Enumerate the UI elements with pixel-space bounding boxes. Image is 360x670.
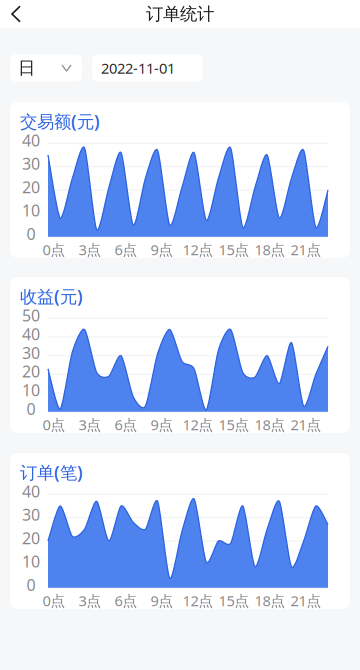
- button[interactable]: 日: [10, 54, 82, 81]
- staticText: 18点: [254, 240, 285, 259]
- staticText: 订单(笔): [20, 461, 83, 484]
- staticText: 30: [22, 504, 40, 525]
- staticText: 21点: [290, 415, 321, 434]
- staticText: 3点: [78, 240, 101, 259]
- staticText: 20: [22, 527, 40, 549]
- staticText: 20: [22, 361, 40, 382]
- staticText: 0: [26, 398, 35, 419]
- staticText: 6点: [114, 591, 137, 610]
- staticText: 15点: [218, 415, 249, 434]
- staticText: 9点: [150, 240, 173, 259]
- staticText: 0: [26, 223, 35, 244]
- staticText: 0: [26, 574, 35, 595]
- staticText: 40: [22, 130, 40, 151]
- staticText: 9点: [150, 591, 173, 610]
- staticText: 6点: [114, 240, 137, 259]
- staticText: 10: [22, 379, 40, 401]
- staticText: 9点: [150, 415, 173, 434]
- staticText: 30: [22, 153, 40, 174]
- staticText: 2022-11-01: [101, 58, 175, 78]
- button[interactable]: 2022-11-01: [92, 54, 203, 81]
- staticText: 0点: [42, 415, 65, 434]
- staticText: 日: [18, 57, 35, 79]
- staticText: 3点: [78, 591, 101, 610]
- staticText: 订单统计: [146, 3, 214, 25]
- staticText: 15点: [218, 240, 249, 259]
- staticText: 10: [22, 200, 40, 221]
- staticText: 10: [22, 551, 40, 572]
- button[interactable]: 返回: [0, 0, 30, 28]
- staticText: 6点: [114, 415, 137, 434]
- staticText: 0点: [42, 240, 65, 259]
- staticText: 12点: [182, 415, 213, 434]
- staticText: 50: [22, 305, 40, 326]
- staticText: 18点: [254, 415, 285, 434]
- staticText: 40: [22, 323, 40, 344]
- staticText: 18点: [254, 591, 285, 610]
- staticText: 21点: [290, 240, 321, 259]
- staticText: 12点: [182, 591, 213, 610]
- staticText: 40: [22, 481, 40, 502]
- staticText: 15点: [218, 591, 249, 610]
- staticText: 交易额(元): [20, 110, 100, 133]
- staticText: 20: [22, 176, 40, 198]
- staticText: 收益(元): [20, 285, 83, 308]
- staticText: 12点: [182, 240, 213, 259]
- staticText: 0点: [42, 591, 65, 610]
- staticText: 30: [22, 342, 40, 363]
- staticText: 3点: [78, 415, 101, 434]
- staticText: 21点: [290, 591, 321, 610]
